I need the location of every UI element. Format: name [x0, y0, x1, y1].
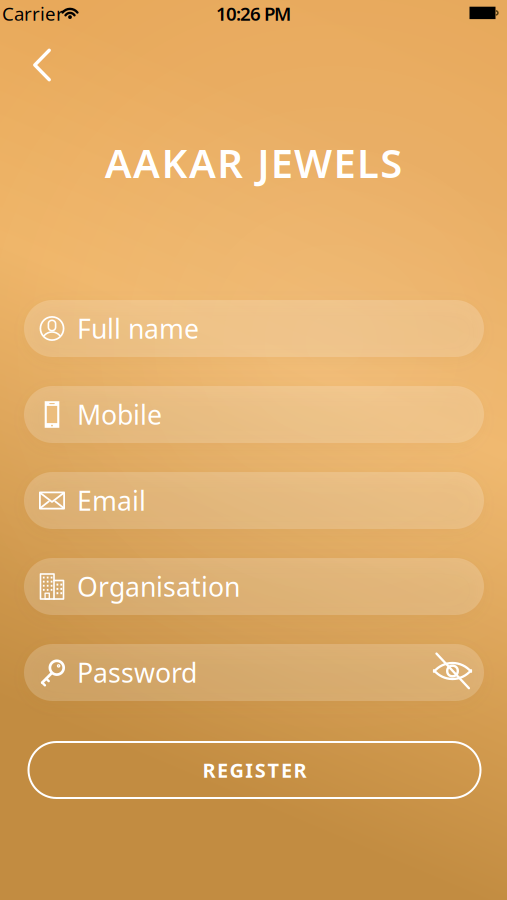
button[interactable]: Password — [24, 644, 484, 701]
button[interactable]: Show password — [433, 653, 484, 691]
staticText: R — [217, 136, 243, 189]
staticText: A — [189, 136, 216, 189]
staticText: Mobile — [77, 397, 162, 432]
button[interactable]: Full name — [24, 300, 484, 357]
staticText: E — [271, 136, 293, 189]
staticText: Organisation — [77, 569, 240, 604]
staticText: A — [133, 136, 160, 189]
staticText: 10:26 PM — [216, 1, 291, 26]
button[interactable]: Mobile — [24, 386, 484, 443]
staticText: REGISTER — [202, 757, 307, 783]
button[interactable]: Back — [23, 38, 61, 91]
staticText: Email — [77, 483, 146, 518]
staticText: Full name — [77, 311, 199, 346]
staticText: Password — [77, 655, 197, 690]
staticText: E — [333, 136, 355, 189]
button[interactable]: Organisation — [24, 558, 484, 615]
button[interactable]: REGISTER — [27, 741, 481, 799]
button[interactable]: Email — [24, 472, 484, 529]
staticText: W — [294, 136, 332, 189]
staticText: L — [357, 136, 379, 189]
staticText: S — [380, 136, 402, 189]
staticText: J — [257, 136, 269, 189]
staticText: A — [105, 136, 132, 189]
staticText: Carrier — [2, 1, 64, 26]
staticText: K — [161, 136, 187, 189]
